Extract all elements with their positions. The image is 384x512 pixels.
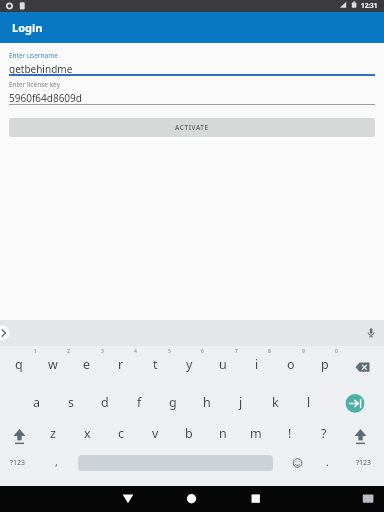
staticText: e [83,356,91,373]
button[interactable]: g [156,392,190,412]
button[interactable] [240,486,272,512]
staticText: c [118,425,125,442]
button[interactable] [9,47,375,76]
staticText: 3 [101,348,104,355]
staticText: x [84,425,91,442]
button[interactable]: o [274,354,308,374]
button[interactable] [2,422,36,444]
staticText: y [186,356,193,373]
staticText: ! [288,425,292,442]
staticText: o [287,356,295,373]
staticText: f [137,394,142,411]
button[interactable]: ?123 [347,453,381,473]
staticText: 5 [168,348,171,355]
button[interactable]: j [224,392,258,412]
staticText: p [321,356,329,373]
staticText: w [48,356,58,373]
button[interactable]: w [36,354,70,374]
button[interactable]: p [308,354,342,374]
staticText: i [255,356,259,373]
staticText: a [33,394,41,411]
button[interactable]: t [138,354,172,374]
staticText: l [307,394,311,411]
button[interactable]: e [70,354,104,374]
staticText: 6 [201,348,204,355]
button[interactable]: ! [273,423,307,443]
staticText: g [169,394,177,411]
button[interactable] [283,452,311,474]
staticText: 4 [134,348,137,355]
button[interactable]: b [172,423,206,443]
staticText: . [326,455,329,469]
button[interactable]: ? [307,423,341,443]
staticText: , [55,455,58,469]
staticText: m [250,425,262,442]
button[interactable] [347,352,381,375]
button[interactable]: d [88,392,122,412]
button[interactable]: q [2,354,36,374]
staticText: z [50,425,56,442]
staticText: d [101,394,109,411]
staticText: j [239,394,243,411]
button[interactable]: , [39,452,73,472]
button[interactable] [356,486,380,512]
button[interactable]: u [206,354,240,374]
staticText: 12:31 [361,1,378,10]
staticText: Enter username [9,51,58,60]
staticText: t [153,356,158,373]
staticText: r [118,356,124,373]
staticText: 8 [268,348,271,355]
staticText: 7 [235,348,238,355]
button[interactable] [9,77,375,105]
staticText: 5960f64d8609d [9,91,82,105]
button[interactable]: l [292,392,326,412]
button[interactable]: ?123 [1,453,35,473]
button[interactable]: n [206,423,240,443]
staticText: ACTIVATE [175,123,209,132]
button[interactable]: f [122,392,156,412]
staticText: ?123 [10,458,26,468]
staticText: 2 [67,348,70,355]
staticText: n [219,425,227,442]
staticText: q [15,356,23,373]
button[interactable] [176,486,208,512]
button[interactable] [341,389,369,417]
button[interactable]: k [258,392,292,412]
staticText: u [219,356,227,373]
staticText: 1 [34,348,37,355]
button[interactable] [343,422,377,444]
staticText: getbehindme [9,62,73,76]
button[interactable]: c [104,423,138,443]
button[interactable]: z [36,423,70,443]
button[interactable]: a [20,392,54,412]
button[interactable]: ACTIVATE [9,118,375,137]
staticText: Enter license key [9,80,60,89]
staticText: v [152,425,159,442]
button[interactable]: y [172,354,206,374]
button[interactable]: . [310,452,344,472]
button[interactable]: m [239,423,273,443]
button[interactable] [361,323,381,343]
button[interactable]: i [240,354,274,374]
staticText: 9 [302,348,305,355]
button[interactable] [112,486,144,512]
staticText: k [272,394,279,411]
staticText: 0 [335,348,338,355]
button[interactable] [0,323,14,343]
button[interactable]: v [138,423,172,443]
staticText: s [68,394,74,411]
staticText: h [203,394,211,411]
button[interactable]: r [104,354,138,374]
button[interactable]: s [54,392,88,412]
staticText: Login [12,20,43,35]
staticText: ? [321,425,327,442]
button[interactable]: x [70,423,104,443]
staticText: ?123 [356,458,372,468]
button[interactable]: h [190,392,224,412]
staticText: b [185,425,193,442]
